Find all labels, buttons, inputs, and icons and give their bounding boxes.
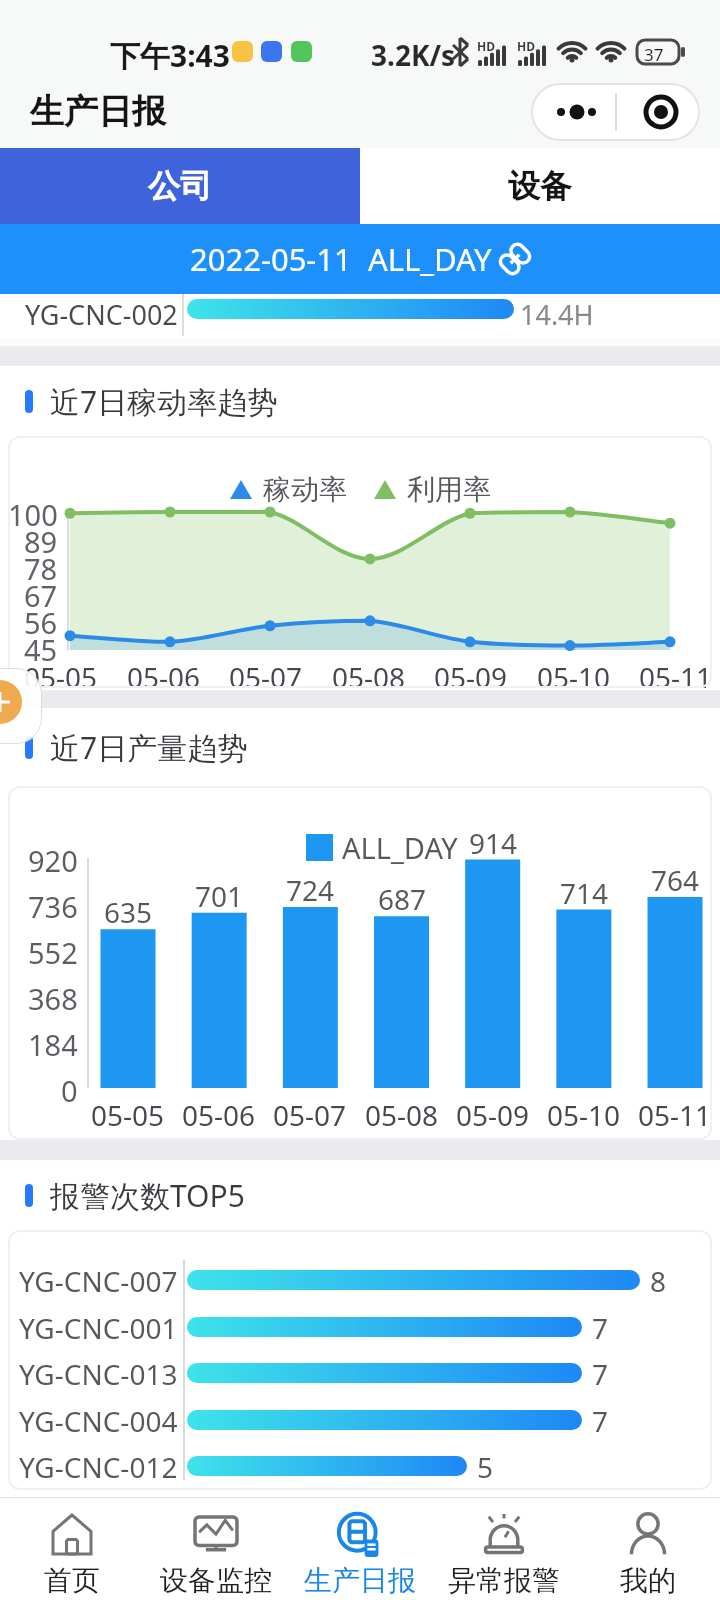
- staticText: 05-11: [639, 658, 713, 696]
- staticText: ALL_DAY: [342, 828, 458, 867]
- staticText: 0: [61, 1071, 78, 1110]
- staticText: 05-05: [24, 658, 98, 696]
- staticText: 设备监控: [160, 1563, 272, 1598]
- staticText: 下午3:43: [110, 35, 230, 76]
- staticText: YG-CNC-007: [19, 1262, 178, 1300]
- staticText: 利用率: [407, 472, 491, 507]
- staticText: 05-09: [434, 658, 508, 696]
- button[interactable]: 生产日报: [288, 1498, 432, 1600]
- button[interactable]: 设备监控: [144, 1498, 288, 1600]
- staticText: YG-CNC-004: [19, 1402, 178, 1440]
- staticText: 05-06: [127, 658, 201, 696]
- staticText: 近7日稼动率趋势: [50, 381, 278, 422]
- button[interactable]: 2022-05-11 ALL_DAY: [0, 224, 720, 294]
- staticText: 67: [24, 576, 58, 615]
- button[interactable]: [0, 668, 42, 744]
- staticText: 56: [24, 603, 58, 642]
- staticText: 2022-05-11 ALL_DAY: [190, 238, 500, 280]
- staticText: 45: [24, 630, 58, 669]
- staticText: 714: [560, 874, 609, 912]
- staticText: 05-08: [332, 658, 406, 696]
- staticText: 5: [477, 1448, 494, 1486]
- staticText: 05-10: [537, 658, 611, 696]
- staticText: 78: [24, 549, 58, 588]
- button[interactable]: 我的: [576, 1498, 720, 1600]
- staticText: YG-CNC-013: [19, 1355, 178, 1393]
- staticText: 05-07: [273, 1096, 347, 1134]
- staticText: 稼动率: [263, 472, 347, 507]
- staticText: 7: [592, 1402, 609, 1440]
- staticText: 687: [378, 880, 427, 918]
- staticText: 736: [28, 887, 78, 926]
- staticText: 724: [286, 871, 335, 909]
- staticText: 701: [195, 877, 244, 915]
- staticText: 05-10: [547, 1096, 621, 1134]
- staticText: 8: [650, 1262, 667, 1300]
- staticText: 635: [104, 893, 153, 931]
- button[interactable]: 异常报警: [432, 1498, 576, 1600]
- staticText: 生产日报: [304, 1563, 416, 1598]
- staticText: 05-05: [91, 1096, 165, 1134]
- staticText: 异常报警: [448, 1563, 560, 1598]
- staticText: HD: [517, 38, 535, 54]
- staticText: 7: [592, 1355, 609, 1393]
- staticText: 05-07: [229, 658, 303, 696]
- staticText: 764: [651, 861, 700, 899]
- button[interactable]: 设备: [360, 148, 720, 224]
- staticText: 公司: [148, 166, 212, 206]
- staticText: 近7日产量趋势: [50, 727, 248, 768]
- staticText: YG-CNC-002: [25, 296, 178, 333]
- staticText: 914: [469, 824, 518, 862]
- staticText: 552: [28, 933, 78, 972]
- staticText: 7: [592, 1309, 609, 1347]
- staticText: 368: [28, 979, 78, 1018]
- staticText: 生产日报: [30, 90, 166, 133]
- staticText: 37: [644, 43, 664, 66]
- staticText: 184: [28, 1025, 78, 1064]
- staticText: 3.2K/s: [371, 36, 456, 74]
- staticText: 05-06: [182, 1096, 256, 1134]
- staticText: 我的: [620, 1563, 676, 1598]
- staticText: 14.4H: [520, 296, 594, 333]
- button[interactable]: 首页: [0, 1498, 144, 1600]
- button[interactable]: 公司: [0, 148, 360, 224]
- staticText: HD: [477, 38, 495, 54]
- staticText: 报警次数TOP5: [50, 1175, 245, 1216]
- staticText: 05-08: [365, 1096, 439, 1134]
- staticText: YG-CNC-001: [19, 1309, 178, 1347]
- staticText: 05-11: [638, 1096, 712, 1134]
- staticText: 100: [8, 495, 58, 534]
- staticText: 设备: [508, 166, 572, 206]
- staticText: 首页: [44, 1563, 100, 1598]
- staticText: YG-CNC-012: [19, 1448, 178, 1486]
- button[interactable]: [531, 83, 700, 141]
- staticText: 05-09: [456, 1096, 530, 1134]
- staticText: 920: [28, 841, 78, 880]
- staticText: 89: [24, 522, 58, 561]
